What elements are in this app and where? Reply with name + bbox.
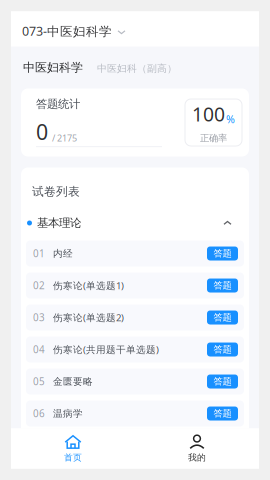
staticText: 01 (33, 247, 45, 260)
staticText: 基本理论 (37, 216, 81, 230)
button[interactable]: 我的 (135, 428, 259, 468)
staticText: 06 (33, 407, 45, 420)
staticText: 伤寒论(单选题2) (53, 311, 124, 324)
staticText: 伤寒论(共用题干单选题) (53, 343, 159, 356)
button[interactable]: 01 (26, 240, 244, 272)
staticText: / 2175 (52, 132, 77, 144)
staticText: 答题 (213, 376, 231, 387)
staticText: 中医妇科（副高） (97, 62, 177, 74)
staticText: % (226, 112, 235, 126)
staticText: 内经 (53, 247, 73, 260)
staticText: 我的 (188, 452, 206, 463)
staticText: 02 (33, 279, 45, 292)
staticText: 首页 (64, 452, 82, 463)
staticText: 答题 (213, 408, 231, 419)
staticText: 正确率 (200, 132, 227, 144)
staticText: 答题 (213, 312, 231, 323)
button[interactable]: 02 (26, 272, 244, 304)
staticText: 答题 (213, 344, 231, 355)
staticText: 答题 (213, 248, 231, 259)
button[interactable]: 06 (26, 400, 244, 432)
staticText: 05 (33, 375, 45, 388)
button[interactable]: 04 (26, 336, 244, 368)
button[interactable]: 05 (26, 368, 244, 400)
staticText: 答题统计 (36, 97, 80, 111)
staticText: 100 (192, 101, 225, 127)
button[interactable]: 03 (26, 304, 244, 336)
staticText: 04 (33, 343, 45, 356)
staticText: 0 (36, 117, 48, 146)
staticText: 伤寒论(单选题1) (53, 279, 124, 292)
staticText: 中医妇科学 (23, 60, 83, 75)
staticText: 073-中医妇科学 (22, 22, 112, 40)
button[interactable]: 首页 (11, 428, 135, 468)
staticText: 答题 (213, 280, 231, 291)
button[interactable]: 基本理论 (21, 211, 249, 240)
staticText: 03 (33, 311, 45, 324)
staticText: 温病学 (53, 407, 83, 420)
staticText: 金匮要略 (53, 375, 93, 388)
staticText: 试卷列表 (32, 184, 80, 199)
